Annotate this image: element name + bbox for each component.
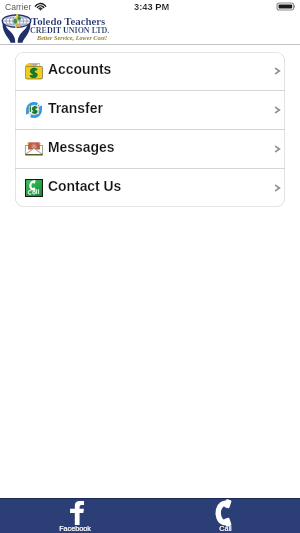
button[interactable]: Accounts: [15, 52, 285, 90]
button[interactable]: Facebook: [0, 499, 150, 533]
staticText: Call: [219, 524, 232, 532]
button[interactable]: Transfer: [15, 91, 285, 129]
staticText: Accounts: [48, 61, 112, 77]
staticText: Messages: [48, 139, 115, 155]
staticText: Toledo Teachers: [31, 15, 106, 27]
staticText: Contact Us: [48, 178, 122, 194]
staticText: Facebook: [59, 524, 91, 532]
staticText: Carrier: [5, 2, 32, 12]
staticText: 3:43 PM: [134, 2, 170, 12]
button[interactable]: Messages: [15, 130, 285, 168]
staticText: CREDIT UNION LTD.: [30, 26, 110, 35]
button[interactable]: Contact Us: [15, 169, 285, 207]
staticText: Transfer: [48, 100, 103, 116]
button[interactable]: Call: [150, 499, 300, 533]
staticText: Better Service, Lower Cost!: [37, 34, 108, 41]
